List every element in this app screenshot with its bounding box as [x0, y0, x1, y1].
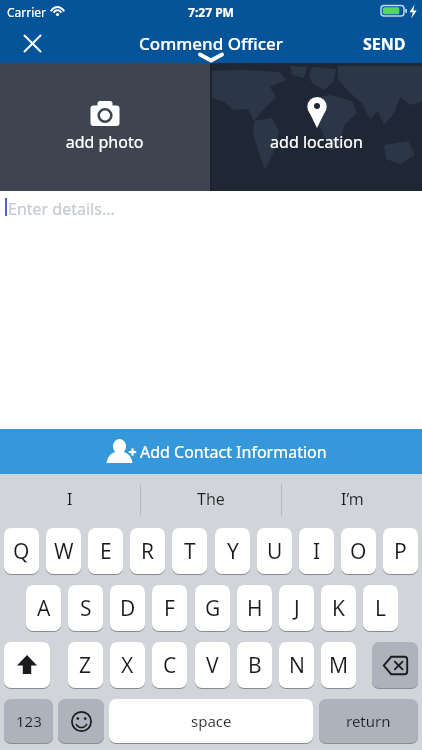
button[interactable]: I — [0, 476, 140, 522]
staticText: I — [313, 537, 321, 566]
staticText: E — [100, 537, 112, 566]
button[interactable]: B — [237, 642, 272, 688]
button[interactable]: P — [383, 528, 418, 574]
button[interactable]: G — [195, 585, 230, 631]
button[interactable]: A — [26, 585, 61, 631]
staticText: I — [67, 488, 73, 510]
button[interactable] — [197, 52, 225, 63]
button[interactable]: U — [257, 528, 292, 574]
button[interactable]: L — [363, 585, 398, 631]
staticText: K — [332, 594, 345, 623]
staticText: Enter details... — [8, 198, 115, 220]
button[interactable]: Z — [68, 642, 103, 688]
staticText: D — [120, 594, 136, 623]
staticText: return — [346, 711, 391, 731]
staticText: space — [191, 711, 232, 731]
button[interactable]: return — [319, 699, 418, 743]
staticText: add location — [211, 131, 422, 153]
staticText: I’m — [341, 488, 364, 510]
button[interactable]: I’m — [282, 476, 422, 522]
button[interactable]: K — [321, 585, 356, 631]
staticText: The — [197, 488, 225, 510]
staticText: add photo — [0, 131, 209, 153]
button[interactable] — [0, 63, 210, 191]
button[interactable]: N — [279, 642, 314, 688]
button[interactable]: D — [110, 585, 145, 631]
button[interactable]: J — [279, 585, 314, 631]
staticText: 7:27 PM — [0, 4, 422, 20]
button[interactable]: Y — [215, 528, 250, 574]
staticText: J — [294, 594, 300, 623]
button[interactable]: SEND — [350, 31, 406, 57]
staticText: F — [164, 594, 175, 623]
button[interactable] — [14, 29, 50, 57]
button[interactable]: H — [237, 585, 272, 631]
button[interactable]: V — [195, 642, 230, 688]
button[interactable]: O — [341, 528, 376, 574]
staticText: X — [121, 651, 134, 680]
button[interactable]: space — [109, 699, 313, 743]
staticText: Y — [227, 537, 239, 566]
button[interactable]: T — [172, 528, 207, 574]
button[interactable] — [212, 63, 422, 191]
button[interactable] — [58, 699, 104, 743]
staticText: Commend Officer — [0, 32, 422, 55]
button[interactable]: M — [321, 642, 356, 688]
staticText: W — [54, 537, 74, 566]
staticText: Carrier — [7, 4, 47, 20]
button[interactable] — [0, 429, 422, 474]
staticText: S — [80, 594, 92, 623]
button[interactable]: E — [88, 528, 123, 574]
button[interactable]: I — [299, 528, 334, 574]
staticText: Q — [13, 537, 30, 566]
staticText: U — [267, 537, 283, 566]
staticText: G — [205, 594, 221, 623]
staticText: N — [289, 651, 305, 680]
button[interactable]: Q — [4, 528, 39, 574]
button[interactable]: R — [130, 528, 165, 574]
button[interactable]: S — [68, 585, 103, 631]
staticText: SEND — [363, 33, 406, 55]
button[interactable]: The — [141, 476, 281, 522]
staticText: T — [184, 537, 196, 566]
staticText: Z — [79, 651, 92, 680]
button[interactable]: C — [152, 642, 187, 688]
staticText: A — [37, 594, 51, 623]
button[interactable]: F — [152, 585, 187, 631]
staticText: B — [248, 651, 262, 680]
staticText: V — [206, 651, 219, 680]
staticText: 123 — [16, 711, 42, 731]
staticText: R — [141, 537, 155, 566]
staticText: O — [350, 537, 367, 566]
staticText: M — [329, 651, 349, 680]
staticText: L — [375, 594, 387, 623]
button[interactable]: 123 — [4, 699, 53, 743]
staticText: P — [394, 537, 407, 566]
button[interactable]: X — [110, 642, 145, 688]
staticText: C — [163, 651, 177, 680]
button[interactable] — [372, 642, 418, 688]
staticText: H — [247, 594, 263, 623]
button[interactable]: W — [46, 528, 81, 574]
staticText: Add Contact Information — [140, 441, 327, 463]
button[interactable] — [4, 642, 50, 688]
